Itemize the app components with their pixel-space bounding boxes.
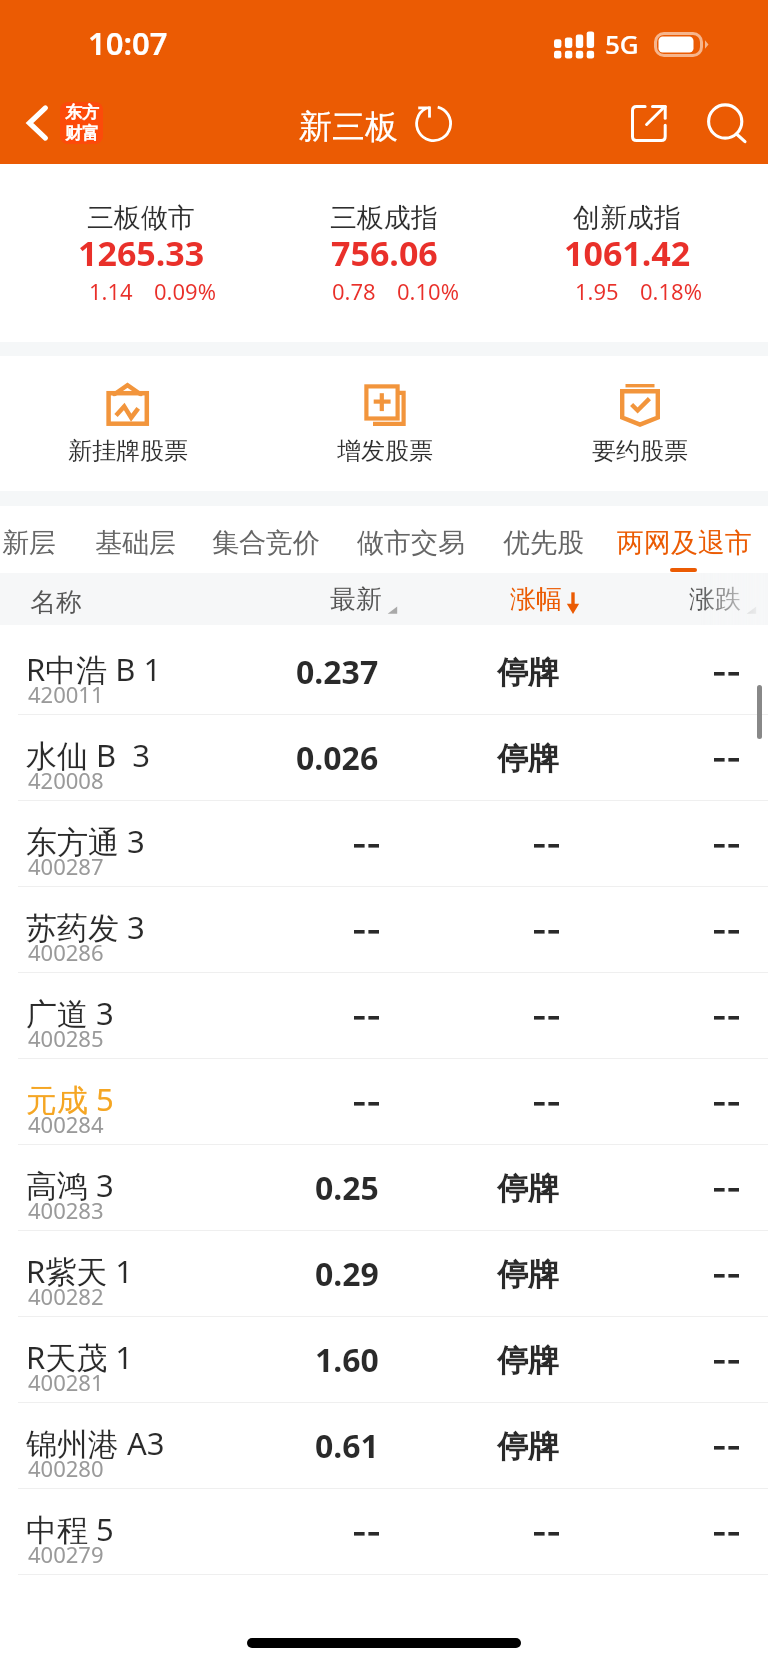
button[interactable]: R紫天 1 bbox=[0, 1231, 768, 1317]
staticText: 广道 3 bbox=[26, 992, 114, 1034]
staticText: 756.06 bbox=[331, 230, 438, 276]
staticText: 集合竞价 bbox=[212, 526, 320, 560]
button[interactable]: 创新成指 bbox=[507, 164, 747, 342]
button[interactable]: 锦州港 A3 bbox=[0, 1403, 768, 1489]
staticText: R紫天 1 bbox=[26, 1250, 134, 1292]
staticText: 优先股 bbox=[503, 526, 584, 560]
staticText: 停牌 bbox=[497, 1427, 559, 1466]
button[interactable]: 元成 5 bbox=[0, 1059, 768, 1145]
staticText: 元成 5 bbox=[26, 1078, 114, 1120]
button[interactable]: R中浩 B 1 bbox=[0, 629, 768, 715]
staticText: 锦州港 A3 bbox=[26, 1422, 165, 1464]
staticText: 东方通 3 bbox=[26, 820, 145, 862]
button[interactable]: 涨幅 bbox=[510, 573, 580, 624]
staticText: 停牌 bbox=[497, 1169, 559, 1208]
button[interactable]: Back bbox=[21, 96, 109, 150]
button[interactable]: 做市交易 bbox=[341, 506, 481, 573]
staticText: 0.61 bbox=[315, 1424, 379, 1468]
staticText: 420011 bbox=[28, 679, 104, 709]
staticText: 0.25 bbox=[315, 1166, 379, 1210]
staticText: 中程 5 bbox=[26, 1508, 114, 1550]
staticText: 1061.42 bbox=[564, 230, 691, 276]
staticText: 0.10% bbox=[397, 276, 459, 306]
staticText: 5G bbox=[605, 26, 639, 61]
staticText: 1.60 bbox=[315, 1338, 379, 1382]
staticText: 停牌 bbox=[497, 739, 559, 778]
staticText: 停牌 bbox=[497, 653, 559, 692]
staticText: 400279 bbox=[28, 1539, 104, 1569]
button[interactable]: 要约股票 bbox=[530, 356, 750, 491]
staticText: 400287 bbox=[28, 851, 104, 881]
staticText: 0.026 bbox=[296, 736, 379, 780]
button[interactable]: Refresh bbox=[411, 105, 455, 149]
staticText: 三板做市 bbox=[87, 201, 195, 235]
staticText: 停牌 bbox=[497, 1341, 559, 1380]
staticText: 400282 bbox=[28, 1281, 104, 1311]
staticText: 创新成指 bbox=[573, 201, 681, 235]
staticText: 1.95 bbox=[575, 276, 619, 306]
staticText: 三板成指 bbox=[330, 201, 438, 235]
staticText: 0.09% bbox=[154, 276, 216, 306]
staticText: 两网及退市 bbox=[617, 526, 752, 560]
button[interactable]: 涨跌 bbox=[689, 573, 759, 624]
staticText: 400286 bbox=[28, 937, 104, 967]
staticText: 高鸿 3 bbox=[26, 1164, 114, 1206]
button[interactable]: 基础层 bbox=[79, 506, 192, 573]
staticText: 0.78 bbox=[332, 276, 376, 306]
staticText: 名称 bbox=[30, 586, 82, 619]
staticText: 苏药发 3 bbox=[26, 906, 145, 948]
staticText: 0.237 bbox=[296, 650, 379, 694]
staticText: 10:07 bbox=[88, 22, 168, 64]
staticText: 要约股票 bbox=[592, 436, 688, 466]
staticText: 420008 bbox=[28, 765, 104, 795]
staticText: 水仙 B 3 bbox=[26, 734, 151, 776]
staticText: 财富 bbox=[65, 123, 99, 144]
staticText: 0.29 bbox=[315, 1252, 379, 1296]
staticText: 涨幅 bbox=[510, 583, 562, 616]
button[interactable]: 高鸿 3 bbox=[0, 1145, 768, 1231]
staticText: 最新 bbox=[330, 583, 382, 616]
button[interactable]: Share bbox=[621, 95, 677, 151]
staticText: 基础层 bbox=[95, 526, 176, 560]
staticText: 创新层 bbox=[0, 526, 56, 560]
staticText: 停牌 bbox=[497, 1255, 559, 1294]
button[interactable]: 中程 5 bbox=[0, 1489, 768, 1575]
button[interactable]: 苏药发 3 bbox=[0, 887, 768, 973]
staticText: 做市交易 bbox=[357, 526, 465, 560]
button[interactable]: 优先股 bbox=[487, 506, 600, 573]
button[interactable]: 三板做市 bbox=[21, 164, 261, 342]
button[interactable]: 三板成指 bbox=[264, 164, 504, 342]
button[interactable]: 广道 3 bbox=[0, 973, 768, 1059]
staticText: 东方 bbox=[65, 102, 99, 123]
button[interactable]: 两网及退市 bbox=[601, 506, 768, 573]
staticText: 增发股票 bbox=[337, 436, 433, 466]
staticText: 400283 bbox=[28, 1195, 104, 1225]
staticText: R天茂 1 bbox=[26, 1336, 134, 1378]
staticText: 新三板 bbox=[299, 106, 398, 148]
staticText: 400284 bbox=[28, 1109, 104, 1139]
button[interactable]: Search bbox=[698, 96, 758, 156]
staticText: 0.18% bbox=[640, 276, 702, 306]
button[interactable]: R天茂 1 bbox=[0, 1317, 768, 1403]
staticText: R中浩 B 1 bbox=[26, 648, 162, 690]
staticText: 1265.33 bbox=[78, 230, 205, 276]
staticText: 400280 bbox=[28, 1453, 104, 1483]
staticText: 1.14 bbox=[89, 276, 133, 306]
staticText: 涨跌 bbox=[689, 583, 741, 616]
button[interactable]: 创新层 bbox=[0, 506, 72, 573]
staticText: 400281 bbox=[28, 1367, 104, 1397]
button[interactable]: 集合竞价 bbox=[196, 506, 336, 573]
staticText: 400285 bbox=[28, 1023, 104, 1053]
button[interactable]: 水仙 B 3 bbox=[0, 715, 768, 801]
button[interactable]: 新挂牌股票 bbox=[18, 356, 238, 491]
button[interactable]: 最新 bbox=[330, 573, 400, 624]
button[interactable]: 东方通 3 bbox=[0, 801, 768, 887]
button[interactable]: 增发股票 bbox=[275, 356, 495, 491]
staticText: 新挂牌股票 bbox=[68, 436, 188, 466]
